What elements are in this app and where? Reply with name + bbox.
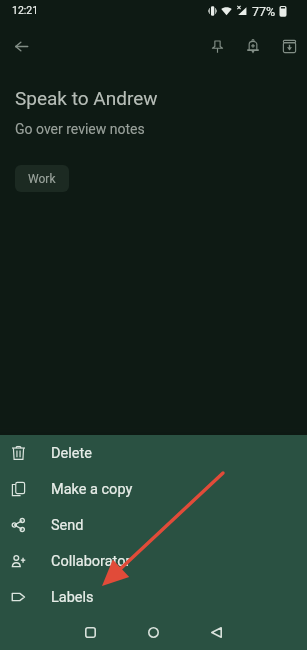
- button[interactable]: Archive: [271, 28, 307, 64]
- button[interactable]: Send: [0, 507, 307, 543]
- button[interactable]: Labels: [0, 579, 307, 615]
- staticText: Go over review notes: [15, 121, 145, 137]
- staticText: Collaborator: [51, 553, 131, 570]
- button[interactable]: Work: [15, 165, 69, 192]
- staticText: Send: [51, 517, 84, 534]
- staticText: 77%: [252, 4, 276, 19]
- staticText: Delete: [51, 445, 92, 462]
- button[interactable]: Back: [197, 615, 236, 650]
- staticText: Speak to Andrew: [15, 87, 158, 109]
- button[interactable]: Delete: [0, 435, 307, 471]
- staticText: Make a copy: [51, 481, 133, 498]
- button[interactable]: Recents: [71, 615, 110, 650]
- button[interactable]: Add reminder: [235, 28, 271, 64]
- button[interactable]: Make a copy: [0, 471, 307, 507]
- staticText: Labels: [51, 589, 94, 606]
- staticText: 12:21: [12, 4, 39, 16]
- button[interactable]: Back: [3, 28, 40, 65]
- button[interactable]: Collaborator: [0, 543, 307, 579]
- button[interactable]: Pin: [199, 28, 235, 64]
- button[interactable]: Home: [134, 615, 173, 650]
- staticText: Work: [28, 172, 56, 186]
